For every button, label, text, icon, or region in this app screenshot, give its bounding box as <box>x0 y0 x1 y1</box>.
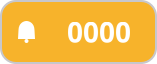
button[interactable]: Notifications, 0000 <box>0 0 157 64</box>
staticText: 0000 <box>67 13 131 51</box>
